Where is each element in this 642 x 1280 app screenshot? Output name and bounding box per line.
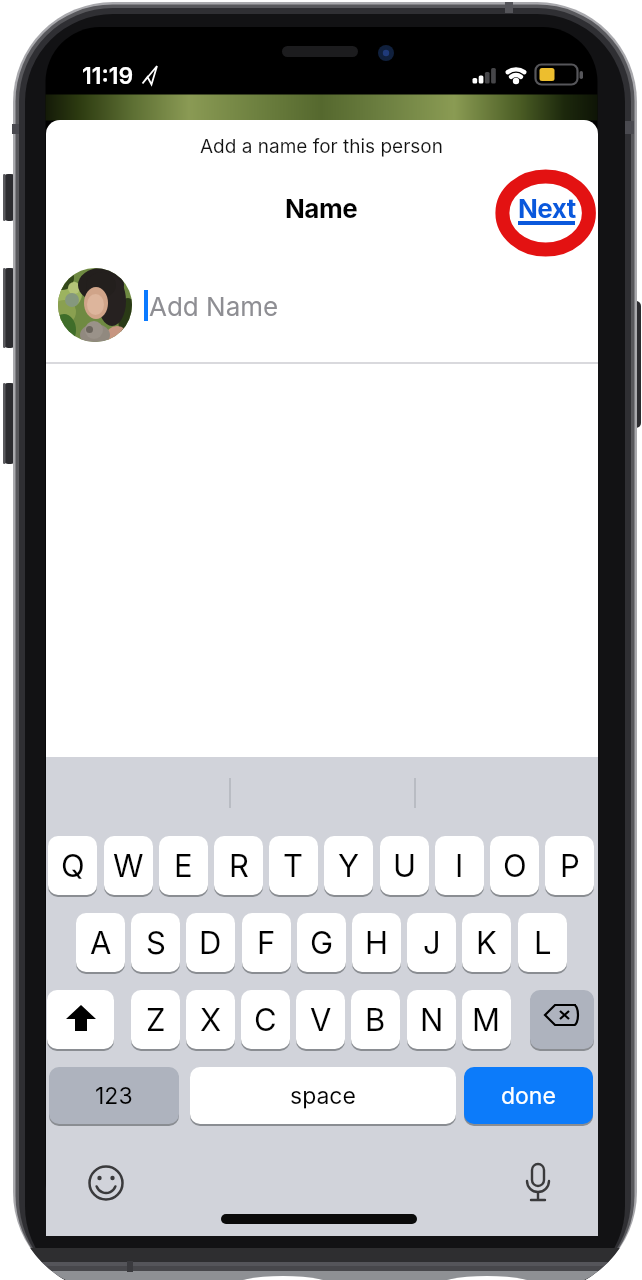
staticText: R — [229, 847, 249, 885]
staticText: I — [455, 847, 464, 885]
button[interactable]: U — [380, 836, 429, 895]
staticText: K — [476, 924, 497, 962]
button[interactable]: W — [104, 836, 153, 895]
button[interactable] — [47, 990, 114, 1049]
staticText: Add Name — [149, 291, 279, 322]
staticText: 123 — [95, 1082, 133, 1110]
button[interactable]: Y — [324, 836, 373, 895]
staticText: Y — [338, 847, 360, 885]
button[interactable]: L — [518, 913, 567, 972]
button[interactable]: Q — [48, 836, 97, 895]
staticText: done — [501, 1082, 556, 1110]
button[interactable]: 123 — [49, 1067, 179, 1124]
staticText: D — [199, 924, 222, 962]
staticText: A — [90, 924, 112, 962]
staticText: C — [254, 1001, 277, 1039]
staticText: L — [534, 924, 552, 962]
button[interactable]: K — [462, 913, 511, 972]
staticText: U — [393, 847, 417, 885]
button[interactable] — [88, 1165, 124, 1201]
button[interactable] — [530, 990, 594, 1049]
button[interactable]: R — [214, 836, 263, 895]
staticText: Name — [285, 193, 358, 224]
button[interactable]: Add Name — [149, 281, 449, 331]
staticText: T — [283, 847, 304, 885]
button[interactable]: B — [351, 990, 400, 1049]
button[interactable]: O — [490, 836, 539, 895]
staticText: H — [365, 924, 389, 962]
staticText: W — [113, 847, 144, 885]
button[interactable]: I — [435, 836, 484, 895]
button[interactable]: T — [269, 836, 318, 895]
button[interactable]: P — [545, 836, 594, 895]
button[interactable]: D — [186, 913, 235, 972]
button[interactable]: done — [464, 1067, 593, 1124]
button[interactable]: J — [407, 913, 456, 972]
staticText: X — [200, 1001, 222, 1039]
button[interactable]: M — [462, 990, 511, 1049]
button[interactable]: Z — [131, 990, 180, 1049]
staticText: G — [310, 924, 334, 962]
button[interactable]: Next — [512, 190, 580, 230]
button[interactable] — [58, 268, 132, 342]
staticText: Z — [146, 1001, 166, 1039]
staticText: B — [365, 1001, 386, 1039]
staticText: E — [174, 847, 193, 885]
staticText: M — [472, 1001, 501, 1039]
button[interactable]: F — [242, 913, 291, 972]
button[interactable]: S — [131, 913, 180, 972]
staticText: 11:19 — [82, 62, 134, 90]
button[interactable]: N — [407, 990, 456, 1049]
staticText: Q — [61, 847, 85, 885]
staticText: O — [503, 847, 527, 885]
staticText: J — [423, 924, 441, 962]
staticText: space — [290, 1082, 356, 1110]
staticText: Add a name for this person — [200, 135, 443, 158]
button[interactable] — [520, 1162, 556, 1204]
staticText: N — [420, 1001, 444, 1039]
button[interactable]: X — [186, 990, 235, 1049]
staticText: S — [146, 924, 166, 962]
button[interactable]: H — [352, 913, 401, 972]
button[interactable]: E — [159, 836, 208, 895]
button[interactable]: G — [297, 913, 346, 972]
button[interactable]: C — [241, 990, 290, 1049]
button[interactable]: V — [296, 990, 345, 1049]
staticText: Next — [518, 193, 576, 224]
button[interactable]: space — [190, 1067, 456, 1124]
staticText: F — [257, 924, 276, 962]
staticText: V — [310, 1001, 332, 1039]
button[interactable]: A — [76, 913, 125, 972]
staticText: P — [560, 847, 580, 885]
